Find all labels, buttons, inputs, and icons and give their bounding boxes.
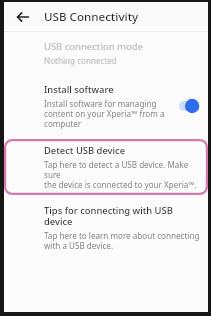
staticText: Tips for connecting with USB device: [44, 204, 201, 228]
staticText: Install software: [44, 83, 114, 96]
button[interactable]: Tips for connecting with USB device: [4, 204, 208, 251]
staticText: Install software for managing content on…: [44, 98, 165, 129]
staticText: Tap here to learn more about connecting …: [44, 230, 200, 251]
staticText: Nothing connected: [44, 55, 117, 66]
staticText: Tap here to detect a USB device. Make su…: [44, 159, 201, 190]
button[interactable]: Install software: [4, 83, 208, 129]
button[interactable]: Detect USB device: [4, 139, 208, 195]
button[interactable]: USB connection mode: [4, 40, 208, 66]
staticText: Detect USB device: [44, 144, 126, 157]
button[interactable]: Back: [10, 4, 36, 30]
button[interactable]: Install software toggle: [179, 98, 201, 114]
staticText: USB Connectivity: [44, 9, 139, 25]
staticText: USB connection mode: [44, 40, 143, 53]
